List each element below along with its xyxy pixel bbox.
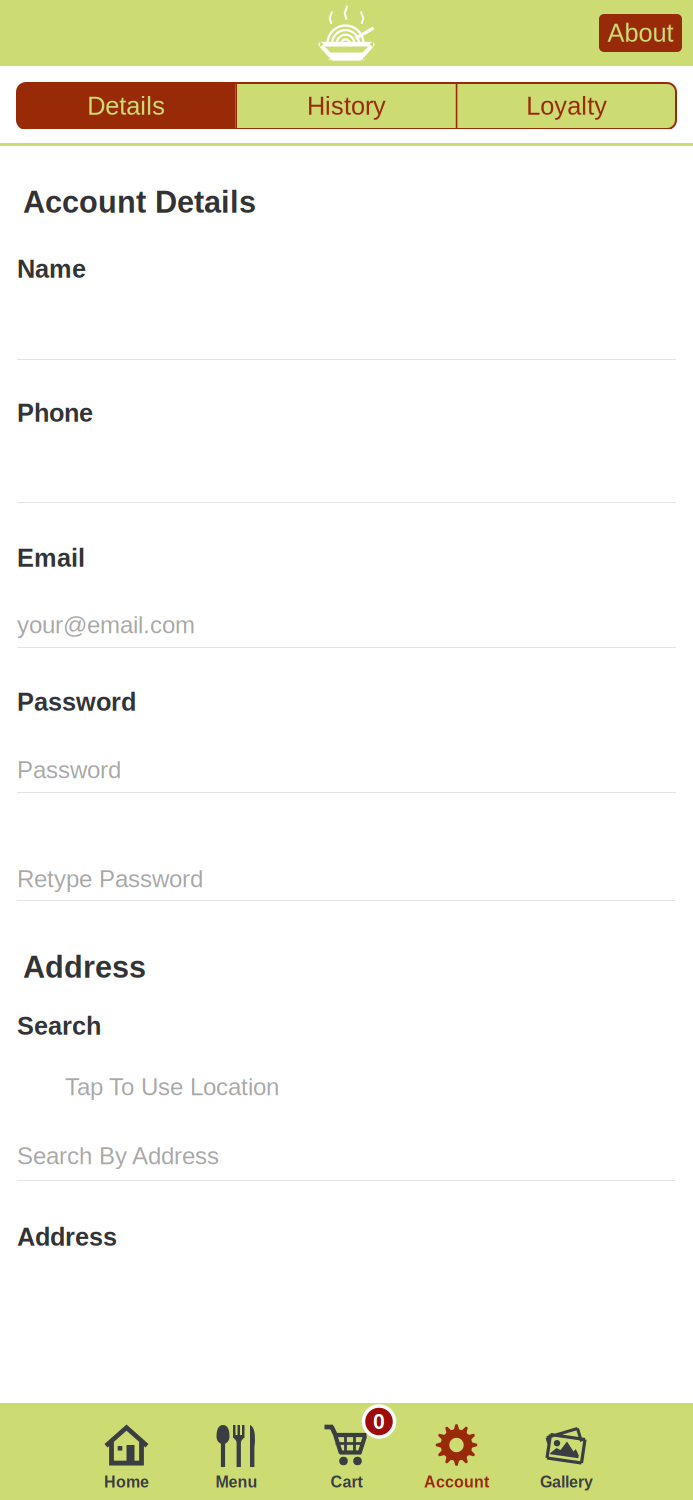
staticText: Loyalty	[526, 92, 607, 120]
staticText: 0	[373, 1410, 385, 1433]
staticText: Search By Address	[17, 1143, 219, 1169]
staticText: Menu	[215, 1473, 257, 1491]
staticText: Details	[87, 92, 165, 120]
staticText: Email	[17, 544, 85, 572]
button[interactable]: Details	[17, 83, 235, 129]
staticText: Home	[104, 1473, 149, 1491]
staticText: Search	[17, 1012, 101, 1040]
button[interactable]: Tap To Use Location	[17, 1071, 676, 1103]
button[interactable]: About	[599, 14, 682, 52]
staticText: History	[307, 92, 386, 120]
staticText: Account Details	[23, 185, 256, 219]
button[interactable]: Account	[401, 1423, 511, 1491]
button[interactable]: 0	[291, 1423, 401, 1491]
staticText: Tap To Use Location	[65, 1074, 279, 1100]
staticText: Account	[424, 1473, 489, 1491]
staticText: Gallery	[540, 1473, 593, 1491]
button[interactable]: Loyalty	[458, 83, 676, 129]
button[interactable]: Menu	[181, 1423, 291, 1491]
staticText: Password	[17, 688, 136, 716]
staticText: Address	[17, 1223, 117, 1251]
staticText: About	[607, 19, 673, 47]
staticText: Phone	[17, 399, 93, 427]
staticText: Cart	[330, 1473, 362, 1491]
button[interactable]: Home	[71, 1423, 181, 1491]
staticText: Password	[17, 757, 121, 783]
button[interactable]: History	[237, 83, 456, 129]
staticText: Address	[23, 950, 146, 984]
button[interactable]: Gallery	[511, 1423, 621, 1491]
staticText: your@email.com	[17, 612, 195, 638]
staticText: Retype Password	[17, 866, 203, 892]
staticText: Name	[17, 255, 86, 283]
